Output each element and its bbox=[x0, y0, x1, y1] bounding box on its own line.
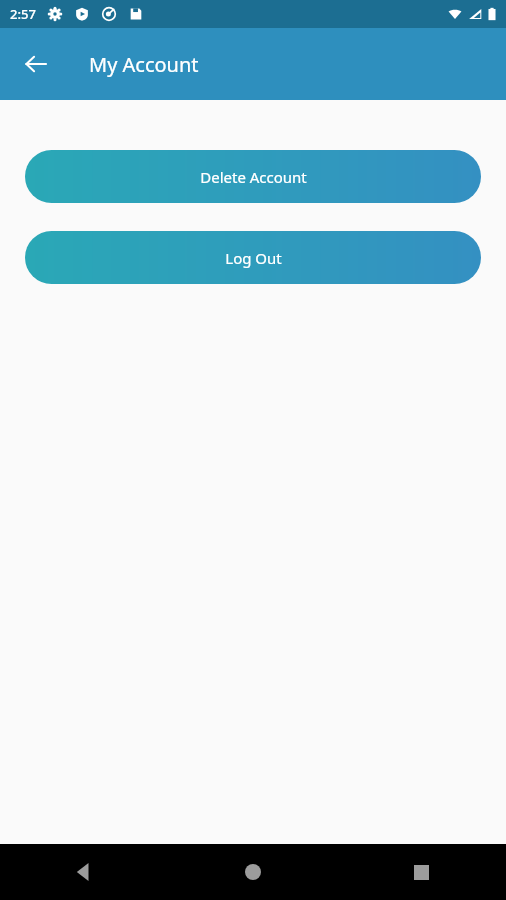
button[interactable]: Log Out bbox=[25, 231, 481, 284]
staticText: Log Out bbox=[225, 248, 282, 268]
staticText: My Account bbox=[89, 51, 199, 78]
button[interactable]: Home bbox=[168, 844, 337, 900]
button[interactable]: Recent apps bbox=[337, 844, 506, 900]
button[interactable]: Back bbox=[0, 844, 168, 900]
staticText: 2:57 bbox=[10, 5, 36, 23]
staticText: Delete Account bbox=[200, 167, 307, 187]
button[interactable]: Delete Account bbox=[25, 150, 481, 203]
button[interactable]: Back bbox=[16, 44, 56, 84]
